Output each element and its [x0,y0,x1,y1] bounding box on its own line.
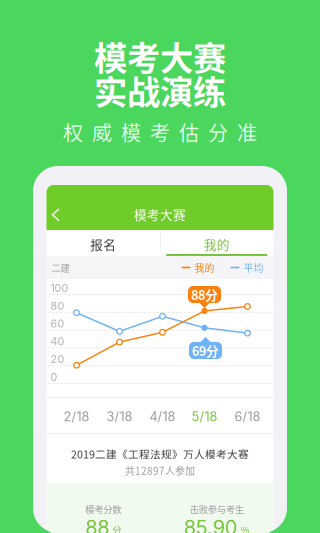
staticText: 100 [50,281,68,294]
staticText: 模考大赛 [134,205,186,223]
staticText: 20 [50,353,64,366]
staticText: 5/18 [191,409,217,424]
staticText: 准 [237,117,257,146]
staticText: 模 [121,117,141,146]
button[interactable]: Back [46,199,72,231]
staticText: 模考大赛 [94,32,226,80]
staticText: 模考分数 [85,502,121,516]
staticText: 平均 [243,260,263,275]
staticText: 考 [150,117,170,146]
staticText: 85.90 [184,515,238,533]
button[interactable]: 报名 [46,230,160,256]
staticText: 88分 [191,285,218,304]
staticText: 88 [85,515,109,533]
staticText: 69分 [192,341,219,360]
staticText: 实战演练 [94,66,226,114]
staticText: 威 [92,117,112,146]
staticText: 报名 [90,235,116,253]
staticText: 40 [50,335,64,348]
staticText: % [241,523,250,533]
staticText: 分 [208,117,228,146]
staticText: 二建 [51,261,69,274]
staticText: 分 [112,523,121,533]
staticText: 3/18 [106,409,132,424]
staticText: 0 [50,370,57,383]
staticText: 2/18 [63,409,89,424]
staticText: 我的 [204,235,230,253]
staticText: 权 [63,117,83,146]
staticText: 6/18 [234,409,260,424]
staticText: 共12897人参加 [125,463,195,478]
staticText: 2019二建《工程法规》万人模考大赛 [71,446,249,461]
staticText: 我的 [194,260,214,275]
staticText: 估 [179,117,199,146]
button[interactable]: 我的 [160,230,273,256]
staticText: 击败参与考生 [190,502,244,516]
staticText: 4/18 [149,409,175,424]
staticText: 80 [50,299,64,312]
staticText: 60 [50,317,64,330]
